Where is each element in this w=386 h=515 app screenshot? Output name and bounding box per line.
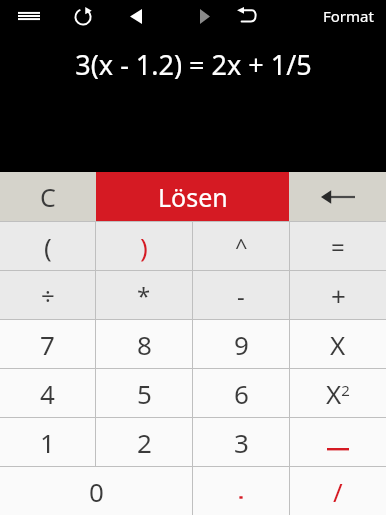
staticText: ÷ [41, 279, 55, 312]
button[interactable]: Backspace [289, 172, 386, 221]
button[interactable]: = [290, 222, 386, 270]
button[interactable]: 7 [0, 320, 95, 368]
button[interactable]: X2 [290, 369, 386, 417]
staticText: ( [44, 229, 52, 264]
button[interactable]: Underscore [290, 418, 386, 466]
staticText: 7 [40, 327, 55, 362]
button[interactable]: Next [184, 0, 226, 32]
staticText: Lösen [158, 180, 228, 214]
button[interactable]: 1 [0, 418, 95, 466]
button[interactable]: Format [311, 0, 386, 32]
button[interactable]: 3 [193, 418, 289, 466]
button[interactable]: ) [96, 222, 192, 270]
staticText: / [333, 474, 343, 509]
button[interactable]: 8 [96, 320, 192, 368]
button[interactable]: 4 [0, 369, 95, 417]
button[interactable]: 9 [193, 320, 289, 368]
staticText: 6 [234, 376, 249, 411]
staticText: 2 [137, 425, 152, 460]
staticText: 4 [40, 376, 55, 411]
button[interactable]: + [290, 271, 386, 319]
button[interactable]: ^ [193, 222, 289, 270]
button[interactable]: Redo [62, 0, 104, 32]
staticText: ) [140, 229, 148, 264]
staticText: ^ [235, 231, 248, 261]
staticText: X [330, 327, 346, 362]
staticText: 0 [89, 474, 104, 509]
button[interactable]: 0 [0, 467, 192, 515]
button[interactable]: / [290, 467, 386, 515]
staticText: * [137, 279, 151, 312]
button[interactable]: C [0, 172, 96, 221]
button[interactable]: Lösen [96, 172, 289, 221]
button[interactable]: * [96, 271, 192, 319]
button[interactable]: Menu [8, 0, 50, 32]
staticText: - [237, 279, 245, 312]
staticText: 1 [40, 425, 55, 460]
button[interactable]: X [290, 320, 386, 368]
staticText: 9 [234, 327, 249, 362]
staticText: Format [323, 6, 374, 26]
button[interactable]: ( [0, 222, 95, 270]
staticText: 3(x - 1.2) = 2x + 1/5 [75, 46, 312, 83]
button[interactable]: Decimal point [193, 467, 289, 515]
button[interactable]: 2 [96, 418, 192, 466]
staticText: C [40, 180, 56, 214]
staticText: 5 [137, 376, 152, 411]
staticText: + [331, 278, 346, 313]
button[interactable]: 5 [96, 369, 192, 417]
button[interactable]: Undo [225, 0, 267, 32]
button[interactable]: 6 [193, 369, 289, 417]
staticText: 3 [234, 425, 249, 460]
button[interactable]: Previous [115, 0, 157, 32]
button[interactable]: - [193, 271, 289, 319]
staticText: X2 [326, 376, 350, 411]
staticText: 8 [137, 327, 152, 362]
button[interactable]: ÷ [0, 271, 95, 319]
staticText: = [331, 230, 345, 263]
